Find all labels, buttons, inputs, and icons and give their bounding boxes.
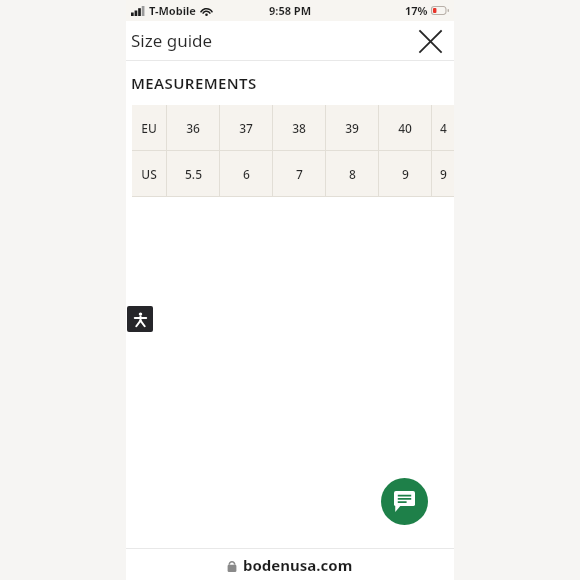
button[interactable]: Open chat [381, 478, 428, 525]
staticText: 7 [296, 166, 303, 182]
button[interactable]: Close [414, 25, 446, 57]
staticText: bodenusa.com [243, 555, 353, 575]
staticText: 9 [402, 166, 409, 182]
staticText: MEASUREMENTS [131, 73, 257, 93]
staticText: EU [141, 120, 157, 136]
staticText: 6 [243, 166, 250, 182]
staticText: 39 [345, 120, 359, 136]
staticText: 9 [440, 166, 447, 182]
button[interactable]: bodenusa.com [126, 549, 454, 580]
staticText: Size guide [131, 29, 213, 52]
staticText: 9:58 PM [269, 3, 312, 18]
staticText: 17% [405, 3, 428, 18]
staticText: US [141, 166, 157, 182]
staticText: 36 [186, 120, 200, 136]
staticText: 4 [440, 120, 447, 136]
staticText: 37 [239, 120, 253, 136]
button[interactable]: Accessibility options [127, 306, 153, 332]
staticText: T-Mobile [149, 3, 196, 18]
staticText: 40 [398, 120, 412, 136]
staticText: 5.5 [185, 166, 202, 182]
staticText: 8 [349, 166, 356, 182]
staticText: 38 [292, 120, 306, 136]
